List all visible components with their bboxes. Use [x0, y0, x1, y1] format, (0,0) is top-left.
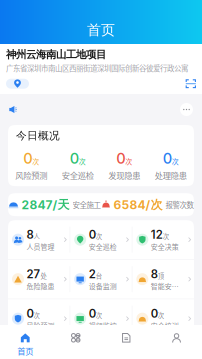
staticText: 0 — [116, 149, 125, 167]
staticText: 处 — [40, 271, 46, 280]
staticText: 0 — [89, 307, 96, 320]
staticText: 报警次数 — [166, 199, 194, 210]
staticText: 处理隐患 — [155, 169, 187, 181]
button[interactable]: 8 — [132, 260, 194, 299]
staticText: 神州云海南山工地项目 — [6, 48, 106, 61]
button[interactable]: 6584/次 — [101, 197, 194, 212]
button[interactable] — [50, 333, 101, 357]
staticText: 安全施工 — [72, 199, 100, 210]
button[interactable]: 首页 — [0, 333, 50, 357]
staticText: 0 — [23, 149, 32, 167]
staticText: 首页 — [87, 21, 115, 39]
staticText: 次 — [158, 310, 164, 320]
button[interactable]: Scan — [186, 78, 196, 89]
staticText: 8 — [26, 228, 33, 241]
staticText: 设备监测 — [89, 281, 117, 291]
button[interactable]: 0 — [101, 149, 147, 181]
staticText: 安全培训 — [151, 320, 179, 330]
button[interactable]: 0 — [54, 149, 101, 181]
staticText: 今日概况 — [16, 129, 60, 142]
staticText: 2847/天 — [21, 197, 69, 212]
button[interactable]: 2 — [70, 260, 132, 299]
button[interactable]: 0 — [132, 299, 194, 338]
button[interactable]: 0 — [70, 299, 132, 338]
button[interactable]: 12 — [132, 220, 194, 259]
staticText: 视频监控 — [89, 320, 117, 330]
staticText: 首页 — [17, 345, 33, 357]
staticText: 6584/次 — [114, 197, 163, 212]
staticText: 安全决策 — [151, 241, 179, 251]
button[interactable]: More — [180, 103, 193, 116]
staticText: 次 — [172, 156, 179, 166]
staticText: 次 — [96, 310, 102, 320]
staticText: 广东省深圳市南山区西丽街道深圳国际创新谷彼爱行政公寓 — [6, 63, 188, 73]
staticText: 风险预测 — [15, 169, 47, 181]
staticText: 次 — [79, 156, 86, 166]
staticText: 次 — [125, 156, 132, 166]
staticText: 8 — [151, 267, 158, 281]
staticText: 0 — [89, 228, 96, 241]
staticText: 0 — [163, 149, 172, 167]
button[interactable]: 0 — [147, 149, 194, 181]
button[interactable]: 2847/天 — [8, 197, 101, 212]
staticText: 0 — [26, 307, 33, 320]
staticText: 发现隐患 — [108, 169, 140, 181]
button[interactable]: 0 — [8, 299, 70, 338]
staticText: 台 — [96, 271, 102, 280]
staticText: 0 — [151, 307, 158, 320]
button[interactable]: 8 — [8, 220, 70, 259]
staticText: 次 — [96, 231, 102, 241]
button[interactable]: Location — [6, 79, 29, 89]
staticText: 2 — [89, 267, 96, 281]
staticText: 安全巡检 — [62, 169, 94, 181]
staticText: 次 — [32, 156, 39, 166]
staticText: 27 — [26, 267, 40, 281]
staticText: 人员管理 — [26, 241, 54, 251]
staticText: 人 — [33, 231, 39, 241]
staticText: 风险预测 — [26, 320, 54, 330]
button[interactable] — [151, 333, 202, 357]
staticText: 次 — [33, 310, 39, 320]
staticText: 危险隐患 — [26, 281, 54, 291]
staticText: 0 — [70, 149, 79, 167]
staticText: 次 — [163, 231, 169, 241]
button[interactable]: 0 — [70, 220, 132, 259]
staticText: 智能安全帽 — [151, 281, 183, 291]
button[interactable]: 27 — [8, 260, 70, 299]
staticText: 安全巡检 — [89, 241, 117, 251]
button[interactable] — [101, 333, 151, 357]
button[interactable]: 0 — [8, 149, 54, 181]
staticText: 12 — [151, 228, 163, 241]
staticText: 顶 — [158, 271, 164, 280]
